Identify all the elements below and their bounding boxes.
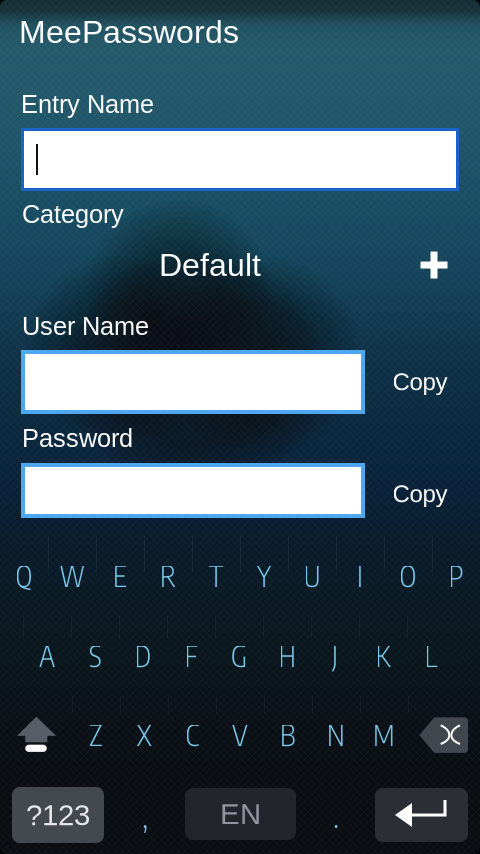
staticText: H (278, 638, 295, 673)
button[interactable]: Q (0, 537, 48, 615)
staticText: X (136, 717, 151, 752)
staticText: User Name (22, 312, 149, 340)
staticText: G (231, 638, 247, 673)
staticText: D (134, 638, 151, 673)
button[interactable]: N (312, 696, 360, 774)
button[interactable]: Default (110, 241, 310, 289)
staticText: J (332, 638, 338, 673)
staticText: W (59, 558, 84, 593)
button[interactable]: K (359, 617, 407, 695)
staticText: S (89, 638, 101, 673)
button[interactable]: C (168, 696, 216, 774)
button[interactable]: Shift (10, 712, 58, 764)
button[interactable]: W (48, 537, 96, 615)
button[interactable]: M (360, 696, 408, 774)
button[interactable]: T (192, 537, 240, 615)
staticText: Entry Name (21, 90, 154, 118)
staticText: Y (257, 558, 271, 593)
button[interactable]: R (144, 537, 192, 615)
staticText: , (142, 795, 148, 835)
staticText: V (232, 717, 248, 752)
staticText: Default (159, 247, 261, 283)
button[interactable]: F (167, 617, 215, 695)
staticText: E (113, 558, 127, 593)
staticText: M (373, 717, 395, 752)
button[interactable]: . (312, 787, 360, 843)
staticText: N (327, 717, 345, 752)
button[interactable]: I (336, 537, 384, 615)
staticText: O (399, 558, 416, 593)
button[interactable]: Backspace (414, 712, 470, 758)
button[interactable]: Z (72, 696, 120, 774)
staticText: Password (22, 424, 133, 452)
button[interactable]: J (311, 617, 359, 695)
button[interactable]: ?123 (12, 787, 104, 843)
button[interactable]: , (121, 787, 169, 843)
staticText: EN (220, 798, 261, 830)
button[interactable]: Copy (378, 360, 462, 404)
button[interactable]: O (384, 537, 432, 615)
button[interactable]: D (119, 617, 167, 695)
staticText: U (303, 558, 320, 593)
button[interactable]: H (263, 617, 311, 695)
staticText: Z (89, 717, 103, 752)
button[interactable]: L (407, 617, 455, 695)
staticText: . (333, 795, 339, 835)
staticText: Category (22, 200, 124, 228)
button[interactable]: G (215, 617, 263, 695)
staticText: MeePasswords (19, 14, 239, 50)
staticText: R (160, 558, 176, 593)
staticText: F (184, 638, 197, 673)
button[interactable]: Y (240, 537, 288, 615)
button[interactable]: Add category (408, 239, 460, 291)
staticText: Copy (392, 369, 447, 395)
button[interactable]: U (288, 537, 336, 615)
button[interactable]: Copy (378, 472, 462, 516)
button[interactable]: S (71, 617, 119, 695)
staticText: P (448, 558, 463, 593)
button[interactable]: X (120, 696, 168, 774)
staticText: T (209, 558, 223, 593)
button[interactable]: E (96, 537, 144, 615)
staticText: L (424, 638, 437, 673)
button[interactable]: V (216, 696, 264, 774)
staticText: Q (15, 558, 32, 593)
staticText: A (39, 638, 55, 673)
button[interactable]: B (264, 696, 312, 774)
staticText: ?123 (26, 799, 90, 831)
button[interactable]: EN (185, 788, 296, 840)
staticText: B (280, 717, 296, 752)
staticText: Copy (392, 481, 447, 507)
button[interactable]: P (432, 537, 480, 615)
staticText: I (357, 558, 363, 593)
button[interactable]: A (23, 617, 71, 695)
staticText: C (185, 717, 198, 752)
button[interactable]: Return (375, 788, 468, 842)
staticText: K (375, 638, 390, 673)
